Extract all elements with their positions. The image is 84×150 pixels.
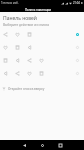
staticText: Панель новей	[3, 15, 37, 22]
staticText: Откройте список вверху	[8, 87, 45, 91]
button[interactable]: Recent apps	[51, 140, 69, 150]
button[interactable]	[0, 67, 84, 80]
staticText: 21:04	[73, 1, 80, 5]
button[interactable]	[0, 41, 84, 54]
button[interactable]	[0, 54, 84, 67]
staticText: Выберите действие из списка	[3, 23, 50, 27]
staticText: Телеком моб.	[1, 1, 19, 5]
staticText: Панель навигации	[25, 8, 52, 12]
button[interactable]	[0, 28, 84, 41]
button[interactable]: Откройте список вверху	[2, 87, 84, 91]
button[interactable]: Home	[33, 140, 51, 150]
button[interactable]: Back	[15, 140, 33, 150]
